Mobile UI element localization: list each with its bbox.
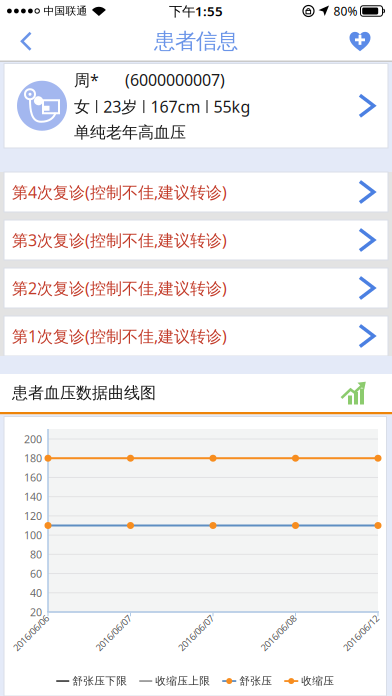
staticText: 20 [30,605,42,619]
staticText: 下午1:55 [169,2,223,20]
button[interactable]: 血压趋势图 [341,381,392,404]
staticText: 160 [24,470,42,485]
staticText: 23岁 [103,96,137,117]
staticText: 中国联通 [43,4,87,17]
staticText: 60 [30,566,42,581]
staticText: 80 [30,547,42,561]
staticText: 收缩压上限 [155,674,210,688]
button[interactable]: 第3次复诊(控制不佳,建议转诊) [0,220,392,260]
button[interactable]: 第4次复诊(控制不佳,建议转诊) [0,172,392,212]
staticText: 2016/06/06 [8,627,54,639]
staticText: 100 [24,528,42,542]
staticText: 40 [30,586,42,600]
staticText: 舒张压 [239,674,272,688]
staticText: 周* [74,69,99,90]
staticText: 140 [24,490,42,504]
staticText: 180 [24,451,42,465]
staticText: 2016/06/12 [338,627,384,639]
staticText: 第3次复诊(控制不佳,建议转诊) [12,229,227,251]
staticText: 收缩压 [301,674,334,688]
staticText: 患者信息 [154,28,238,54]
staticText: 第4次复诊(控制不佳,建议转诊) [12,181,227,203]
staticText: (6000000007) [125,69,225,90]
button[interactable]: 收藏患者 [336,22,384,60]
staticText: 女 [74,97,90,116]
button[interactable]: 第1次复诊(控制不佳,建议转诊) [0,316,392,356]
staticText: 167cm [150,96,200,117]
staticText: 120 [24,509,42,523]
staticText: 55kg [214,96,251,117]
staticText: 80% [333,3,357,19]
staticText: 第2次复诊(控制不佳,建议转诊) [12,277,227,299]
staticText: 舒张压下限 [72,674,127,688]
button[interactable]: 返回 [6,22,46,60]
staticText: 2016/06/07 [90,627,136,639]
staticText: 2016/06/08 [255,627,301,639]
staticText: 患者血压数据曲线图 [12,383,156,403]
button[interactable]: 第2次复诊(控制不佳,建议转诊) [0,268,392,308]
staticText: 2016/06/07 [173,627,219,639]
staticText: 单纯老年高血压 [74,123,186,142]
button[interactable]: 周* [0,62,392,149]
staticText: 第1次复诊(控制不佳,建议转诊) [12,325,227,347]
staticText: 200 [24,432,42,446]
